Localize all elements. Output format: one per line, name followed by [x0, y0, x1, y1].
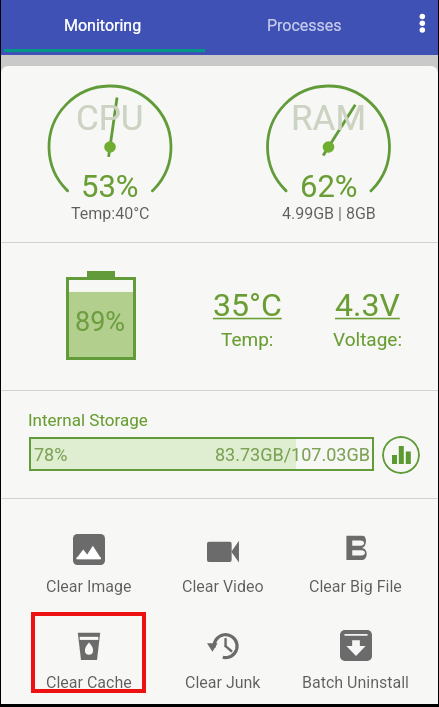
staticText: Monitoring [64, 16, 142, 35]
button[interactable]: Clear Video [156, 499, 289, 599]
staticText: 4.99GB | 8GB [282, 204, 376, 223]
staticText: Processes [267, 16, 342, 35]
staticText: Internal Storage [28, 410, 148, 430]
button[interactable]: 78% [29, 437, 374, 471]
button[interactable]: Monitoring [1, 0, 204, 55]
staticText: Temp: [221, 328, 274, 350]
staticText: 89% [75, 306, 126, 338]
staticText: Clear Image [46, 577, 132, 596]
staticText: Clear Video [182, 577, 264, 596]
button[interactable]: Storage analysis [382, 436, 420, 474]
staticText: RAM [291, 98, 366, 139]
button[interactable]: More options [404, 0, 438, 55]
staticText: Clear Junk [185, 673, 261, 692]
staticText: Temp:40°C [71, 204, 150, 223]
staticText: Batch Uninstall [302, 673, 409, 692]
staticText: Clear Cache [46, 673, 132, 692]
staticText: 35°C [213, 286, 282, 324]
staticText: 53% [81, 168, 139, 204]
button[interactable]: Processes [204, 0, 438, 55]
button[interactable]: Clear Junk [156, 595, 289, 695]
button[interactable]: Clear Cache [22, 595, 156, 695]
button[interactable]: Clear Big File [289, 499, 422, 599]
staticText: 4.3V [335, 286, 400, 324]
button[interactable]: Batch Uninstall [289, 595, 422, 695]
staticText: 83.73GB/107.03GB [215, 444, 370, 465]
staticText: 62% [300, 168, 358, 204]
button[interactable]: Clear Image [22, 499, 156, 599]
staticText: Voltage: [333, 328, 403, 350]
staticText: Clear Big File [309, 577, 402, 596]
staticText: CPU [76, 98, 144, 139]
staticText: 78% [34, 444, 68, 465]
